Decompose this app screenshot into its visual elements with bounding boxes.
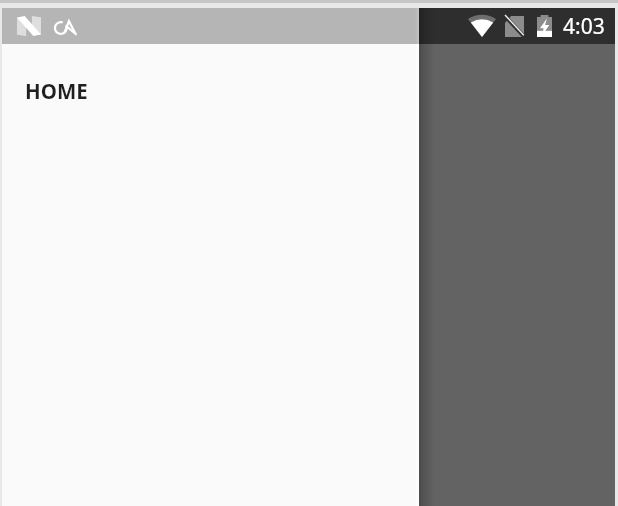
other: Battery charging bbox=[537, 15, 552, 37]
other: Wi-Fi bbox=[468, 15, 496, 37]
other: Connection status bbox=[54, 21, 76, 35]
staticText: HOME bbox=[25, 77, 88, 105]
other: Android N bbox=[17, 16, 41, 36]
staticText: 4:03 bbox=[563, 12, 605, 41]
other: No SIM card bbox=[505, 16, 524, 37]
button[interactable]: Close navigation drawer bbox=[419, 8, 615, 506]
button[interactable]: HOME bbox=[2, 44, 419, 112]
